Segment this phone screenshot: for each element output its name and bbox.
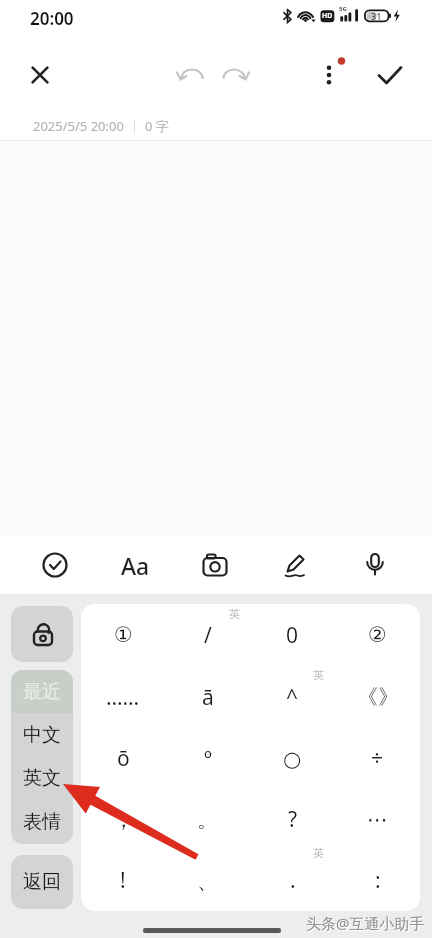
button[interactable] bbox=[273, 543, 317, 587]
staticText: 。 bbox=[197, 807, 218, 833]
button[interactable]: ō bbox=[81, 728, 165, 789]
button[interactable]: …… bbox=[81, 666, 165, 728]
staticText: ÷ bbox=[371, 744, 384, 773]
button[interactable]: ā bbox=[165, 666, 250, 728]
button[interactable]: : bbox=[335, 850, 420, 911]
staticText: ^ bbox=[286, 683, 299, 712]
button[interactable]: 返回 bbox=[11, 855, 73, 909]
button[interactable] bbox=[18, 53, 62, 97]
button[interactable]: 英文 bbox=[11, 756, 73, 800]
button[interactable] bbox=[170, 53, 214, 97]
staticText: 31 bbox=[371, 10, 382, 21]
staticText: ② bbox=[368, 623, 387, 647]
staticText: º bbox=[204, 744, 212, 773]
staticText: ○ bbox=[283, 747, 302, 771]
staticText: ? bbox=[288, 805, 298, 834]
staticText: HD bbox=[322, 11, 333, 21]
button[interactable]: ? bbox=[250, 789, 335, 850]
button[interactable]: 0 bbox=[250, 604, 335, 666]
staticText: Aa bbox=[121, 550, 150, 581]
staticText: ō bbox=[117, 744, 130, 773]
staticText: ⋯ bbox=[367, 808, 388, 832]
staticText: 5G bbox=[339, 5, 347, 13]
staticText: 20:00 bbox=[30, 7, 74, 30]
staticText: 表情 bbox=[23, 810, 61, 834]
staticText: ， bbox=[113, 807, 134, 833]
button[interactable]: ÷ bbox=[335, 728, 420, 789]
button[interactable]: ② bbox=[335, 604, 420, 666]
button[interactable]: 、 bbox=[165, 850, 250, 911]
button[interactable]: 《》 bbox=[335, 666, 420, 728]
staticText: . bbox=[290, 866, 296, 895]
staticText: 英 bbox=[229, 607, 240, 621]
button[interactable]: 中文 bbox=[11, 713, 73, 756]
staticText: 英文 bbox=[23, 766, 61, 790]
button[interactable]: ① bbox=[81, 604, 165, 666]
button[interactable]: 。 bbox=[165, 789, 250, 850]
staticText: ! bbox=[120, 866, 126, 895]
staticText: 0 bbox=[286, 621, 299, 650]
staticText: 2025/5/5 20:00 bbox=[33, 117, 124, 135]
button[interactable]: ^ bbox=[250, 666, 335, 728]
button[interactable]: . bbox=[250, 850, 335, 911]
staticText: ā bbox=[202, 683, 214, 712]
staticText: 头条@互通小助手 bbox=[307, 914, 426, 934]
button[interactable] bbox=[307, 53, 351, 97]
staticText: …… bbox=[106, 683, 140, 712]
staticText: 《》 bbox=[357, 684, 399, 710]
button[interactable]: ， bbox=[81, 789, 165, 850]
staticText: 中文 bbox=[23, 723, 61, 747]
button[interactable]: ! bbox=[81, 850, 165, 911]
button[interactable]: º bbox=[165, 728, 250, 789]
button[interactable]: 最近 bbox=[11, 670, 73, 713]
staticText: 英 bbox=[313, 846, 324, 860]
button[interactable] bbox=[33, 543, 77, 587]
staticText: : bbox=[375, 866, 381, 895]
staticText: 、 bbox=[197, 868, 218, 894]
button[interactable]: / bbox=[165, 604, 250, 666]
button[interactable] bbox=[193, 543, 237, 587]
staticText: 返回 bbox=[23, 870, 61, 894]
button[interactable]: 表情 bbox=[11, 800, 73, 844]
button[interactable]: Aa bbox=[113, 543, 157, 587]
staticText: 头条@互通小助手 bbox=[306, 913, 425, 933]
staticText: 英 bbox=[313, 668, 324, 682]
button[interactable]: ○ bbox=[250, 728, 335, 789]
staticText: 最近 bbox=[23, 680, 61, 704]
staticText: 0 字 bbox=[145, 117, 169, 135]
button[interactable] bbox=[368, 53, 412, 97]
staticText: ① bbox=[114, 623, 133, 647]
button[interactable]: ⋯ bbox=[335, 789, 420, 850]
button[interactable] bbox=[212, 53, 256, 97]
button[interactable] bbox=[11, 606, 73, 662]
staticText: / bbox=[204, 621, 212, 650]
button[interactable] bbox=[353, 543, 397, 587]
